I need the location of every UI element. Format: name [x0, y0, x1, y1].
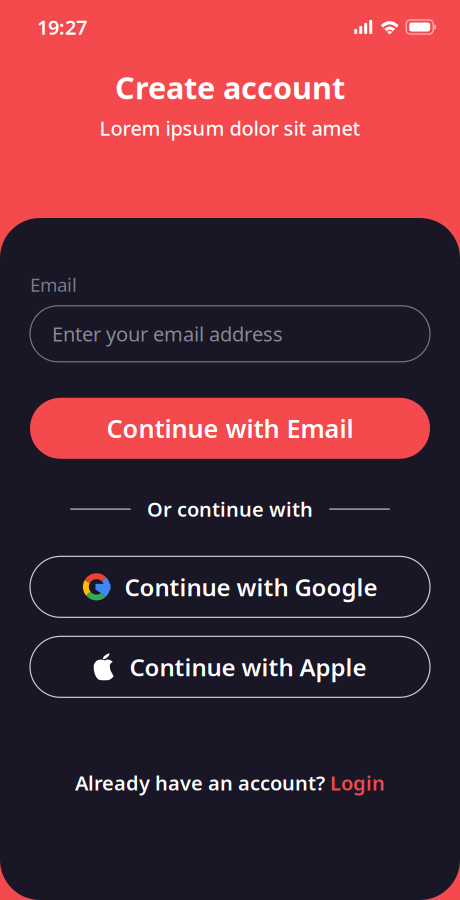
staticText: Continue with Email [106, 411, 353, 445]
staticText: Or continue with [147, 496, 313, 522]
staticText: Email [30, 272, 77, 297]
staticText: 19:27 [37, 14, 87, 40]
staticText: Login [330, 769, 385, 796]
staticText: Already have an account? [75, 769, 330, 796]
staticText: Create account [115, 67, 345, 108]
button[interactable]: Continue with Email [30, 398, 430, 459]
button[interactable]: Continue with Google [30, 556, 430, 617]
button[interactable]: Already have an account? [0, 769, 460, 796]
staticText: Lorem ipsum dolor sit amet [99, 115, 360, 141]
staticText: Continue with Google [124, 571, 377, 603]
staticText: Enter your email address [52, 320, 283, 347]
staticText: Continue with Apple [129, 651, 366, 683]
button[interactable]: Continue with Apple [30, 636, 430, 697]
